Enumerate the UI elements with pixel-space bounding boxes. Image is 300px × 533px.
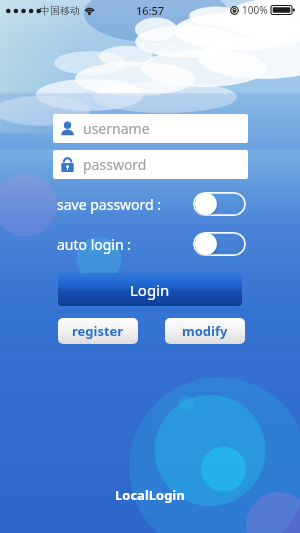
staticText: LocalLogin bbox=[115, 486, 185, 504]
button[interactable]: username bbox=[53, 114, 248, 143]
staticText: register bbox=[72, 322, 124, 340]
staticText: auto login : bbox=[57, 235, 132, 254]
staticText: username bbox=[83, 119, 150, 138]
staticText: Login bbox=[130, 280, 170, 300]
staticText: 100% bbox=[242, 3, 268, 17]
button[interactable]: modify bbox=[165, 318, 245, 344]
staticText: 16:57 bbox=[136, 3, 165, 18]
button[interactable]: Login bbox=[58, 273, 242, 306]
button[interactable]: save password : bbox=[193, 192, 246, 216]
button[interactable]: auto login : bbox=[193, 232, 246, 256]
staticText: password bbox=[83, 155, 147, 174]
staticText: 中国移动 bbox=[40, 4, 80, 17]
button[interactable]: password bbox=[53, 150, 248, 179]
button[interactable]: register bbox=[58, 318, 138, 344]
staticText: save password : bbox=[57, 195, 162, 214]
staticText: modify bbox=[182, 322, 228, 340]
